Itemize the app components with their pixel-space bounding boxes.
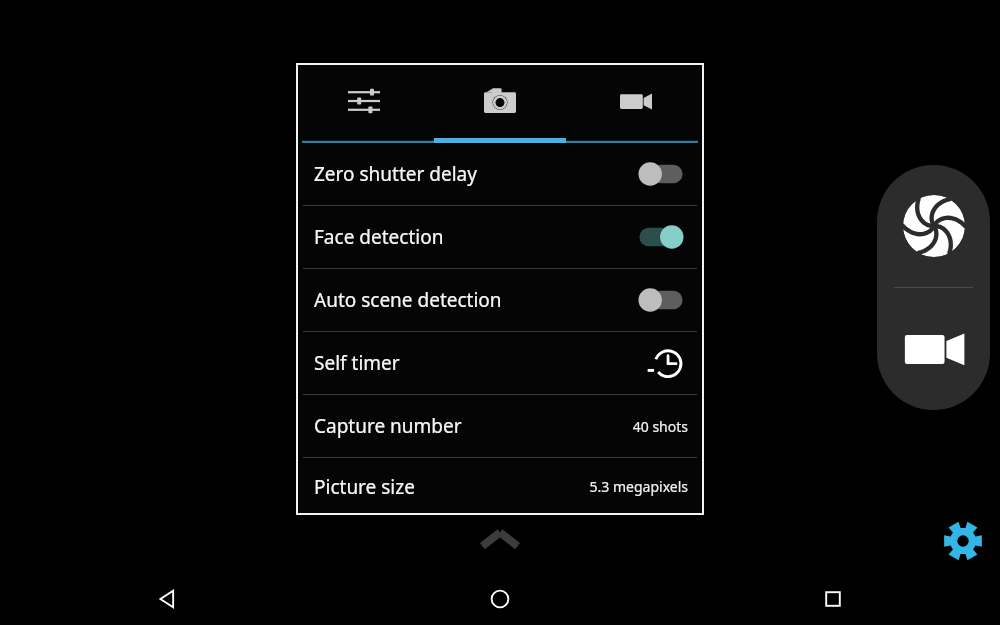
button[interactable]: Home: [471, 573, 529, 625]
staticText: Zero shutter delay: [314, 161, 477, 187]
button[interactable]: Zero shutter delay: [296, 143, 704, 205]
staticText: Auto scene detection: [314, 287, 502, 313]
button[interactable]: Settings: [296, 63, 432, 138]
button[interactable]: Off: [634, 283, 688, 317]
button[interactable]: Off: [634, 157, 688, 191]
button[interactable]: Back: [138, 573, 196, 625]
button[interactable]: Camera: [432, 63, 568, 138]
button[interactable]: Settings: [936, 514, 990, 568]
button[interactable]: Take photo: [877, 165, 990, 287]
button[interactable]: Picture size: [296, 458, 704, 515]
button[interactable]: Video: [568, 63, 704, 138]
staticText: 40 shots: [632, 417, 688, 436]
staticText: Capture number: [314, 413, 462, 439]
button[interactable]: Self timer: [644, 341, 688, 385]
staticText: Self timer: [314, 350, 400, 376]
staticText: Picture size: [314, 474, 415, 500]
button[interactable]: Self timer: [296, 332, 704, 394]
staticText: 5.3 megapixels: [589, 477, 688, 496]
button[interactable]: Record video: [877, 288, 990, 410]
button[interactable]: Face detection: [296, 206, 704, 268]
staticText: Face detection: [314, 224, 444, 250]
button[interactable]: Collapse: [470, 518, 530, 560]
button[interactable]: Auto scene detection: [296, 269, 704, 331]
button[interactable]: Capture number: [296, 395, 704, 457]
button[interactable]: Recents: [804, 573, 862, 625]
button[interactable]: On: [634, 220, 688, 254]
